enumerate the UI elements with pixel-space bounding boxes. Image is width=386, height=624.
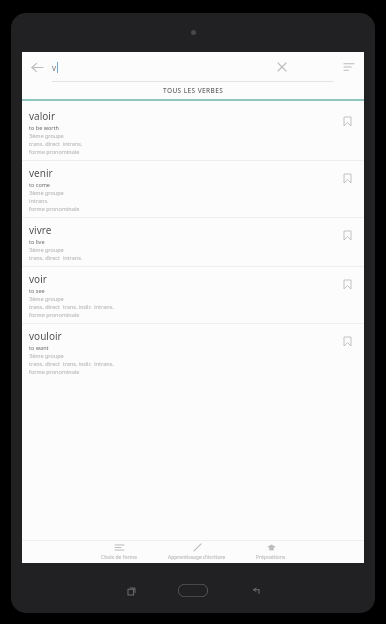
button[interactable]: Prépositions (252, 541, 290, 563)
staticText: vivre (29, 223, 52, 237)
staticText: to see (29, 287, 45, 294)
button[interactable]: vivre (22, 218, 364, 266)
button[interactable]: Bookmark valoir (339, 113, 355, 129)
button[interactable]: Filter (334, 52, 364, 82)
staticText: 3ème groupe (29, 352, 64, 359)
staticText: forme pronominale (29, 368, 80, 375)
staticText: valoir (29, 109, 56, 123)
staticText: to be worth (29, 124, 59, 131)
button[interactable]: Back (22, 52, 52, 82)
other: Recents (126, 586, 136, 596)
staticText: to live (29, 238, 45, 245)
button[interactable]: Bookmark vouloir (339, 333, 355, 349)
other: Home (178, 584, 208, 597)
button[interactable]: voir (22, 267, 364, 323)
staticText: voir (29, 272, 47, 286)
button[interactable]: Clear (272, 57, 292, 77)
staticText: forme pronominale (29, 148, 80, 155)
staticText: trans. direct intrans. (29, 140, 83, 147)
button[interactable]: Apprentissage d'écriture (164, 541, 230, 563)
button[interactable]: valoir (22, 104, 364, 160)
staticText: v (52, 62, 57, 73)
staticText: Choix de forme (101, 554, 138, 561)
button[interactable]: vouloir (22, 324, 364, 380)
button[interactable]: venir (22, 161, 364, 217)
button[interactable]: Bookmark vivre (339, 227, 355, 243)
button[interactable]: Choix de forme (97, 541, 142, 563)
button[interactable]: Bookmark venir (339, 170, 355, 186)
staticText: forme pronominale (29, 205, 80, 212)
button[interactable]: TOUS LES VERBES (22, 82, 364, 101)
staticText: 3ème groupe (29, 295, 64, 302)
staticText: 3ème groupe (29, 132, 64, 139)
staticText: vouloir (29, 329, 62, 343)
staticText: to want (29, 344, 49, 351)
staticText: trans. direct intrans. (29, 254, 83, 261)
staticText: to come (29, 181, 50, 188)
staticText: intrans. (29, 197, 49, 204)
staticText: trans. direct trans. indir. intrans. (29, 303, 114, 310)
staticText: forme pronominale (29, 311, 80, 318)
staticText: TOUS LES VERBES (163, 86, 224, 95)
staticText: Apprentissage d'écriture (168, 554, 226, 561)
other: Back (250, 586, 260, 596)
staticText: 3ème groupe (29, 246, 64, 253)
staticText: 3ème groupe (29, 189, 64, 196)
button[interactable]: Bookmark voir (339, 276, 355, 292)
staticText: trans. direct trans. indir. intrans. (29, 360, 114, 367)
staticText: Prépositions (256, 554, 286, 561)
staticText: venir (29, 166, 53, 180)
